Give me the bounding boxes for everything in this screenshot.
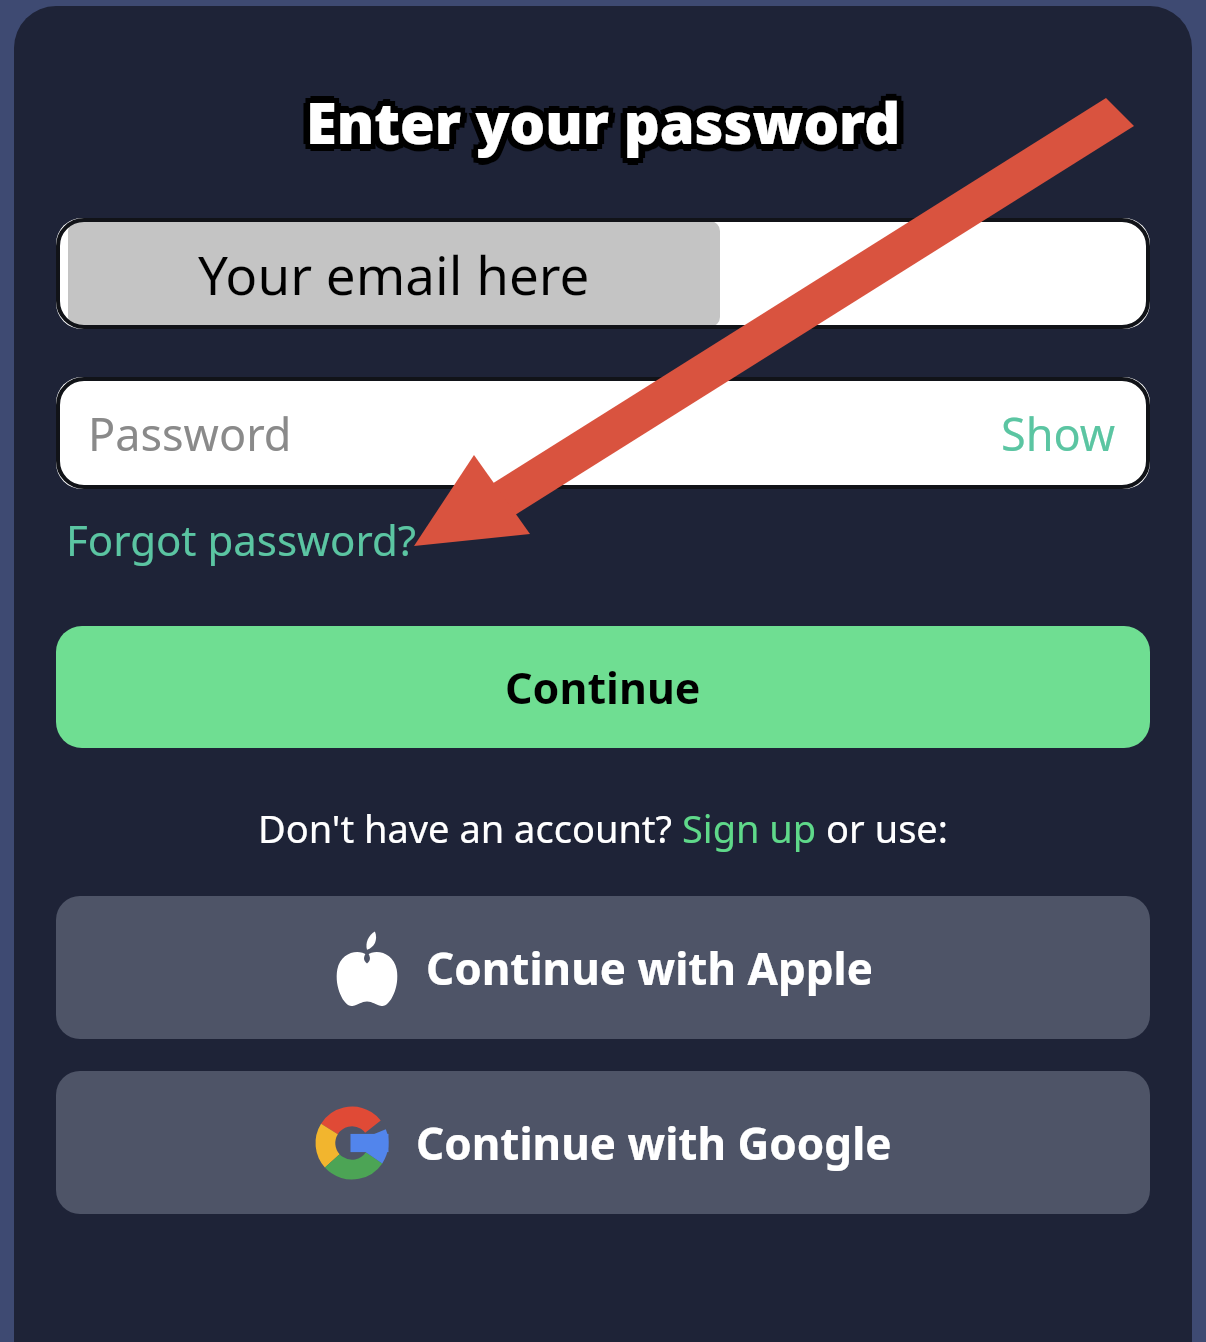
staticText: Forgot password? xyxy=(66,511,417,568)
staticText: Continue with Google xyxy=(416,1113,892,1173)
button[interactable]: Password xyxy=(56,377,1150,489)
staticText: Enter your password xyxy=(306,89,901,165)
staticText: Enter your password xyxy=(311,89,906,165)
staticText: Enter your password xyxy=(306,84,901,160)
staticText: Your email here xyxy=(198,238,590,310)
staticText: Don't have an account? Sign up or use: xyxy=(258,802,948,854)
staticText: Enter your password xyxy=(301,84,896,160)
staticText: Enter your password xyxy=(301,79,896,155)
other: Google xyxy=(314,1105,390,1181)
staticText: Enter your password xyxy=(311,79,906,155)
staticText: Show xyxy=(1001,403,1116,464)
staticText: Password xyxy=(88,403,292,464)
other: Apple xyxy=(334,930,400,1006)
staticText: Enter your password xyxy=(301,89,896,165)
button[interactable]: Google xyxy=(56,1071,1150,1214)
button[interactable]: Don't have an account? Sign up or use: xyxy=(250,798,956,858)
staticText: Enter your password xyxy=(313,84,908,160)
staticText: Enter your password xyxy=(306,77,901,153)
button[interactable]: Continue xyxy=(56,626,1150,748)
staticText: Enter your password xyxy=(299,84,894,160)
staticText: Enter your password xyxy=(311,84,906,160)
button[interactable]: Forgot password? xyxy=(56,505,427,574)
staticText: Enter your password xyxy=(306,91,901,167)
button[interactable]: Show xyxy=(997,397,1120,470)
button[interactable]: Apple xyxy=(56,896,1150,1039)
staticText: Enter your password xyxy=(306,79,901,155)
staticText: Continue xyxy=(505,658,701,717)
button[interactable]: Your email here xyxy=(56,218,1150,329)
staticText: Continue with Apple xyxy=(426,938,873,998)
